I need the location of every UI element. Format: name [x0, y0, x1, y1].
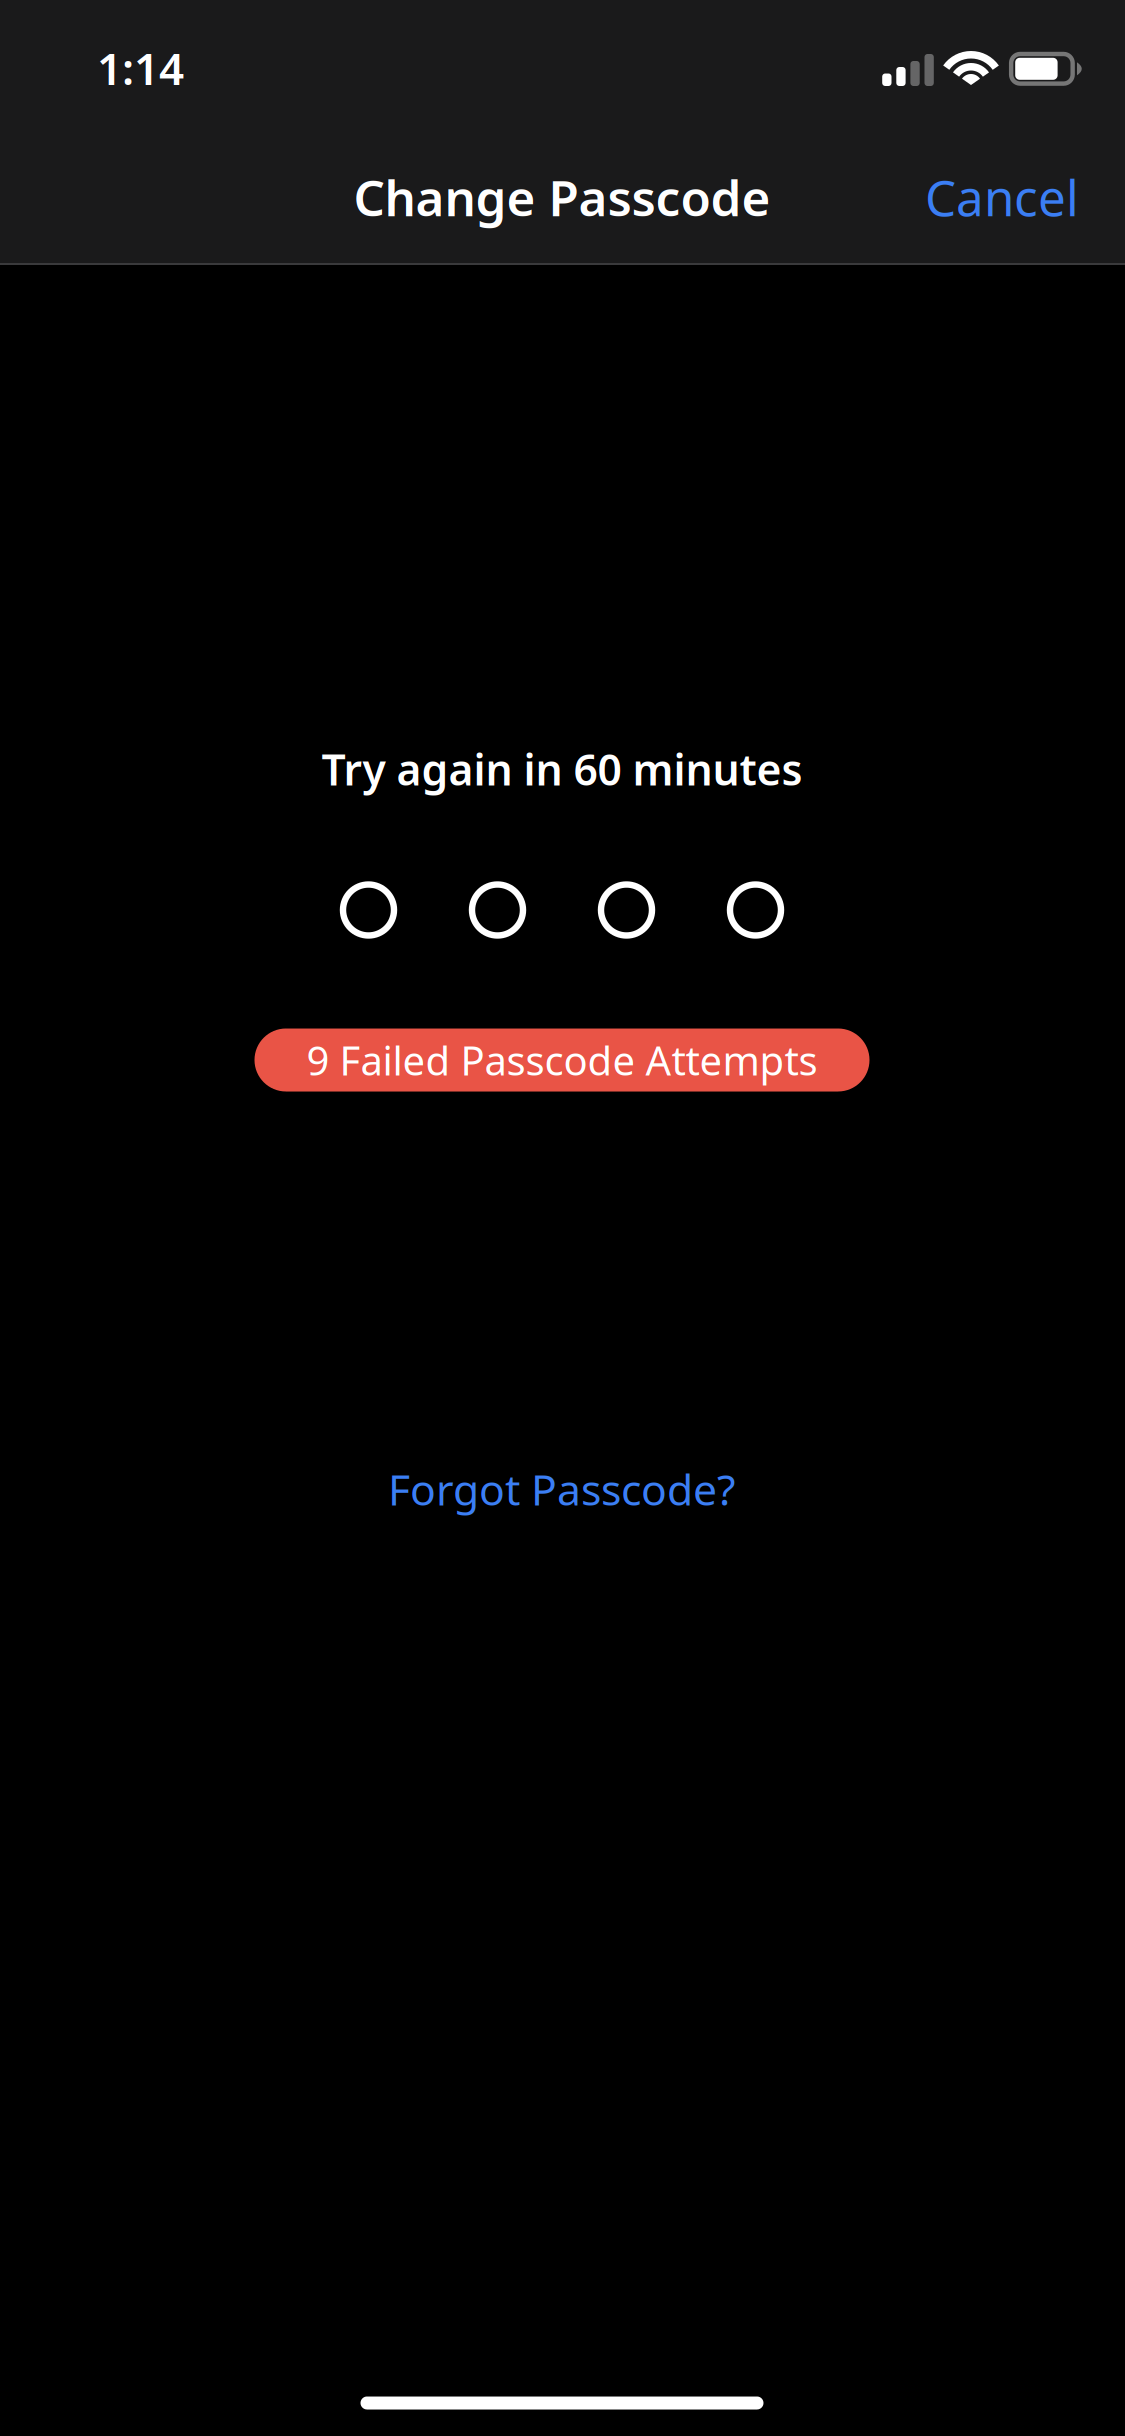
staticText: 1:14: [97, 39, 184, 97]
button[interactable]: Forgot Passcode?: [302, 1441, 822, 1537]
button[interactable]: Cancel: [859, 145, 1079, 249]
staticText: Try again in 60 minutes: [321, 741, 802, 797]
staticText: Forgot Passcode?: [388, 1461, 736, 1517]
staticText: Cancel: [925, 164, 1079, 230]
staticText: 9 Failed Passcode Attempts: [306, 1033, 817, 1086]
button[interactable]: 9 Failed Passcode Attempts: [254, 1028, 869, 1091]
staticText: Change Passcode: [353, 164, 770, 230]
